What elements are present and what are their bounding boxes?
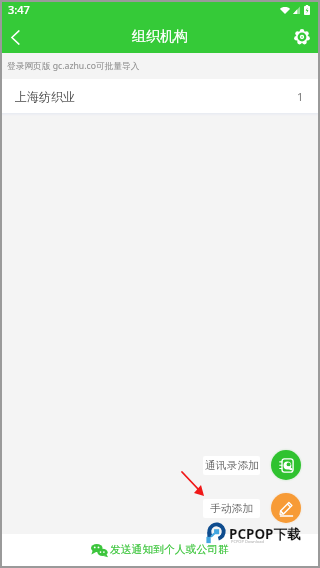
staticText: 组织机构	[132, 28, 188, 46]
button[interactable]: Settings	[287, 21, 318, 53]
staticText: 1	[297, 89, 304, 104]
button[interactable]: Add from contacts	[271, 450, 301, 480]
staticText: 3:47	[8, 2, 30, 17]
staticText: 上海纺织业	[15, 89, 75, 104]
staticText: 发送通知到个人或公司群	[110, 543, 229, 557]
staticText: PCPOP下载	[229, 525, 301, 543]
staticText: 手动添加	[210, 502, 254, 516]
button[interactable]: Back	[2, 21, 33, 53]
button[interactable]: 上海纺织业	[2, 79, 318, 113]
button[interactable]: Add manually	[271, 493, 301, 523]
button[interactable]: 通讯录添加	[203, 456, 260, 475]
button[interactable]: 发送通知到个人或公司群	[2, 534, 318, 566]
staticText: 登录网页版 gc.azhu.co可批量导入	[7, 60, 140, 72]
staticText: 通讯录添加	[205, 459, 259, 473]
button[interactable]: 手动添加	[203, 499, 260, 518]
staticText: PCPOP Download	[231, 539, 264, 544]
